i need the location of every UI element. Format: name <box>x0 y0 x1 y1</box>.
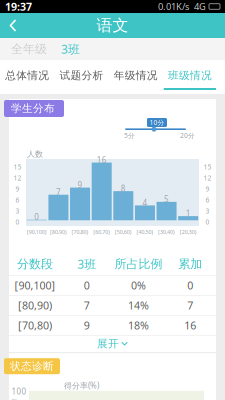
staticText: 14% <box>128 298 149 312</box>
button[interactable]: 展开 <box>9 336 216 352</box>
staticText: [50,60) <box>115 228 132 236</box>
staticText: 总体情况 <box>5 69 49 82</box>
staticText: 得分率(%) <box>64 380 99 391</box>
staticText: 9 <box>84 318 90 332</box>
staticText: 5分 <box>124 131 135 140</box>
staticText: 所占比例 <box>114 257 162 271</box>
staticText: 4G <box>194 0 206 13</box>
staticText: [70,80) <box>72 228 89 236</box>
staticText: 分数段 <box>17 257 53 271</box>
staticText: 0 <box>205 218 209 226</box>
staticText: 3 <box>205 207 209 215</box>
staticText: [60,70) <box>93 228 110 236</box>
staticText: 7 <box>84 298 90 312</box>
staticText: 19:37 <box>5 0 32 14</box>
staticText: 学生分布 <box>11 102 55 115</box>
staticText: [90,100] <box>27 228 47 236</box>
staticText: 16 <box>97 155 107 165</box>
staticText: 15 <box>13 163 21 171</box>
staticText: 6 <box>15 196 19 204</box>
staticText: 人数 <box>27 149 43 159</box>
staticText: 4 <box>142 197 147 208</box>
staticText: 0 <box>34 212 39 222</box>
staticText: [30,40) <box>158 228 175 236</box>
staticText: 累加 <box>178 257 202 271</box>
button[interactable]: 班级情况 <box>163 60 217 94</box>
button[interactable]: 3班 <box>54 38 87 60</box>
staticText: 8 <box>121 183 126 194</box>
staticText: 展开 <box>97 337 119 350</box>
staticText: 全年级 <box>11 42 47 56</box>
staticText: 3班 <box>61 41 80 57</box>
staticText: 0 <box>187 278 193 292</box>
staticText: [20,30) <box>180 228 197 236</box>
button[interactable]: 总体情况 <box>0 60 54 94</box>
staticText: 18% <box>128 318 149 332</box>
staticText: 0 <box>15 218 19 226</box>
staticText: 0.01K/s <box>158 0 189 13</box>
staticText: [80,90) <box>50 228 67 236</box>
staticText: 5 <box>164 194 169 204</box>
staticText: 6 <box>205 196 209 204</box>
staticText: 3班 <box>77 256 96 272</box>
staticText: 7 <box>56 187 61 197</box>
staticText: 9 <box>205 185 209 193</box>
staticText: 16 <box>184 318 196 332</box>
staticText: 100% <box>11 386 26 400</box>
staticText: 12 <box>203 174 211 182</box>
staticText: 7 <box>187 298 193 312</box>
staticText: 0% <box>131 278 146 292</box>
staticText: 语文 <box>96 16 128 35</box>
staticText: 9 <box>15 185 19 193</box>
button[interactable]: 试题分析 <box>54 60 108 94</box>
staticText: [70,80) <box>18 318 52 332</box>
button[interactable]: 全年级 <box>4 38 54 60</box>
staticText: [40,50) <box>136 228 153 236</box>
staticText: 状态诊断 <box>10 360 54 373</box>
staticText: [80,90) <box>18 298 52 312</box>
staticText: 15 <box>203 163 211 171</box>
button[interactable]: 年级情况 <box>108 60 163 94</box>
staticText: 9 <box>78 180 83 190</box>
staticText: 1 <box>186 208 191 219</box>
button[interactable]: Back <box>0 13 29 38</box>
staticText: 班级情况 <box>168 69 212 82</box>
staticText: 10分 <box>149 118 164 127</box>
staticText: 试题分析 <box>59 69 103 82</box>
staticText: [90,100] <box>14 278 55 292</box>
staticText: 0 <box>84 278 90 292</box>
staticText: 12 <box>13 174 21 182</box>
staticText: 20分 <box>180 131 195 140</box>
staticText: 3 <box>15 207 19 215</box>
staticText: 年级情况 <box>114 69 158 82</box>
